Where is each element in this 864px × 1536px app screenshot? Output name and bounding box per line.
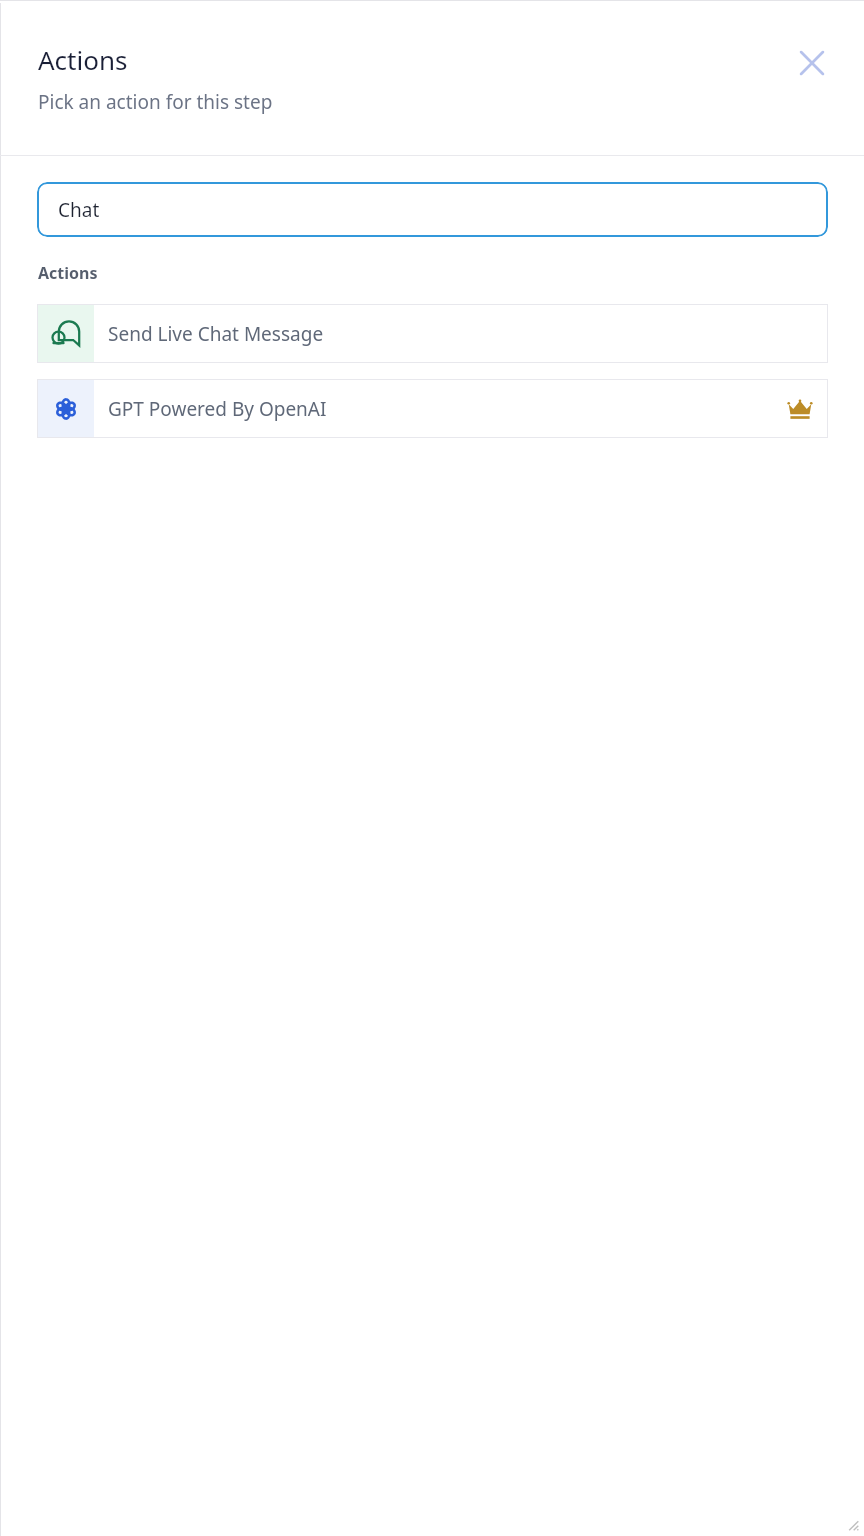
button[interactable]: GPT Powered By OpenAI	[37, 379, 828, 438]
staticText: Chat	[58, 197, 100, 223]
staticText: GPT Powered By OpenAI	[108, 396, 327, 422]
staticText: Actions	[38, 262, 98, 284]
staticText: Actions	[38, 42, 128, 77]
button[interactable]: Send Live Chat Message	[37, 304, 828, 363]
button[interactable]: Close	[786, 37, 838, 89]
staticText: Pick an action for this step	[38, 89, 273, 115]
button[interactable]: Chat	[37, 182, 828, 237]
staticText: Send Live Chat Message	[108, 321, 324, 347]
